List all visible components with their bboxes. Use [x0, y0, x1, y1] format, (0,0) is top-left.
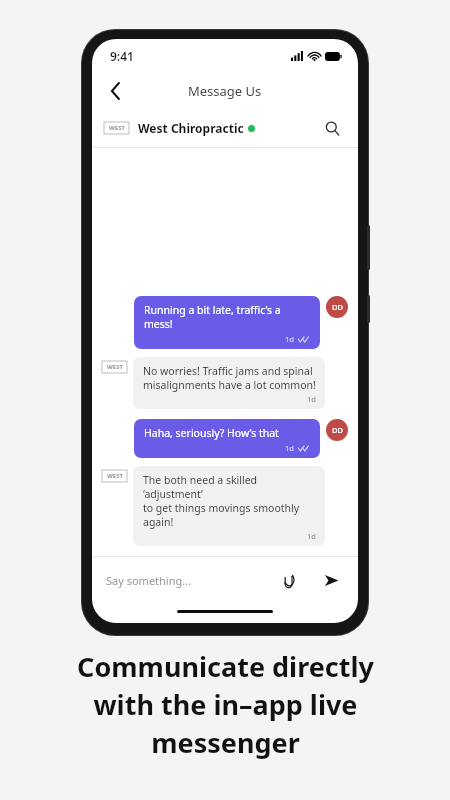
- staticText: The both need a skilled ‘adjustment’ to …: [143, 473, 316, 529]
- staticText: WEST: [107, 472, 123, 480]
- staticText: Communicate directly with the in–app liv…: [77, 648, 374, 761]
- button[interactable]: Running a bit late, traffic’s a mess!: [134, 296, 320, 349]
- button[interactable]: Haha, seriously? How’s that: [134, 419, 320, 458]
- button[interactable]: Back: [98, 74, 132, 108]
- staticText: Message Us: [188, 82, 262, 100]
- staticText: 1d: [307, 531, 316, 541]
- staticText: West Chiropractic: [138, 120, 244, 136]
- button[interactable]: No worries! Traffic jams and spinal misa…: [133, 357, 325, 409]
- button[interactable]: WEST: [92, 109, 358, 147]
- staticText: WEST: [109, 124, 125, 132]
- staticText: Say something...: [106, 573, 192, 588]
- button[interactable]: Attach file: [276, 567, 302, 593]
- button[interactable]: Send: [318, 567, 344, 593]
- staticText: DD: [332, 425, 343, 435]
- staticText: Haha, seriously? How’s that: [144, 426, 279, 440]
- staticText: 1d: [285, 334, 294, 344]
- button[interactable]: The both need a skilled ‘adjustment’ to …: [133, 466, 325, 546]
- button[interactable]: Say something...: [106, 573, 276, 588]
- staticText: DD: [332, 302, 343, 312]
- staticText: 1d: [307, 394, 316, 404]
- staticText: Running a bit late, traffic’s a mess!: [144, 303, 311, 331]
- staticText: 1d: [285, 443, 294, 453]
- staticText: 9:41: [110, 48, 134, 64]
- button[interactable]: Search: [318, 114, 346, 142]
- staticText: No worries! Traffic jams and spinal misa…: [143, 364, 316, 392]
- staticText: WEST: [107, 363, 123, 371]
